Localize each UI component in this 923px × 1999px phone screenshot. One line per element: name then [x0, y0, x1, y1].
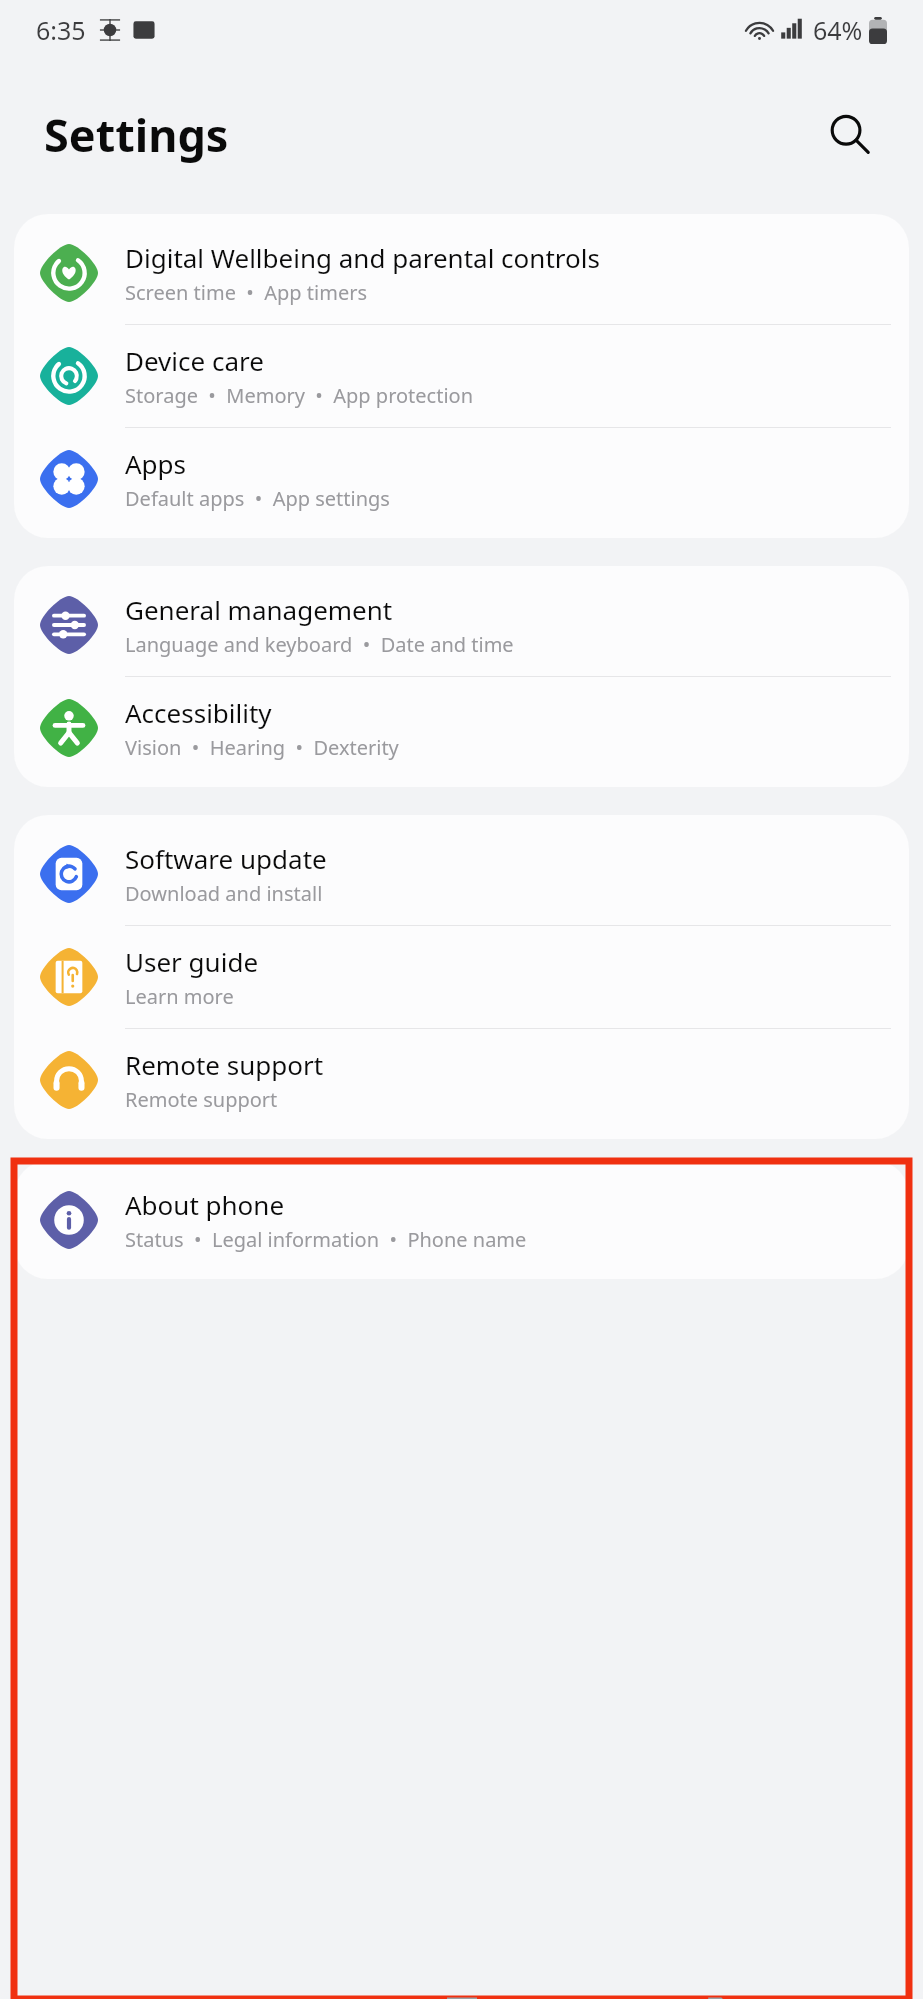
staticText: Status • Legal information • Phone name [125, 1226, 527, 1253]
staticText: Storage • Memory • App protection [125, 382, 474, 409]
staticText: Accessibility [125, 695, 272, 730]
staticText: Learn more [125, 983, 234, 1010]
staticText: About phone [125, 1187, 285, 1222]
staticText: Digital Wellbeing and parental controls [125, 240, 600, 275]
staticText: Apps [125, 446, 187, 481]
staticText: 64% [813, 13, 863, 47]
button[interactable]: Apps [14, 428, 909, 530]
staticText: Screen time • App timers [125, 279, 368, 306]
button[interactable]: General management [14, 574, 909, 676]
staticText: Vision • Hearing • Dexterity [125, 734, 399, 761]
staticText: Remote support [125, 1047, 324, 1082]
staticText: Settings [44, 104, 229, 165]
button[interactable]: Search [819, 104, 879, 164]
staticText: General management [125, 592, 393, 627]
staticText: Device care [125, 343, 264, 378]
staticText: 6:35 [36, 13, 86, 47]
staticText: Remote support [125, 1086, 278, 1113]
button[interactable]: Accessibility [14, 677, 909, 779]
staticText: Software update [125, 841, 327, 876]
button[interactable]: Digital Wellbeing and parental controls [14, 222, 909, 324]
button[interactable]: User guide [14, 926, 909, 1028]
button[interactable]: Remote support [14, 1029, 909, 1131]
button[interactable]: Software update [14, 823, 909, 925]
staticText: Download and install [125, 880, 323, 907]
staticText: Default apps • App settings [125, 485, 390, 512]
staticText: Language and keyboard • Date and time [125, 631, 514, 658]
button[interactable]: Device care [14, 325, 909, 427]
staticText: User guide [125, 944, 259, 979]
button[interactable]: About phone [14, 1169, 909, 1271]
